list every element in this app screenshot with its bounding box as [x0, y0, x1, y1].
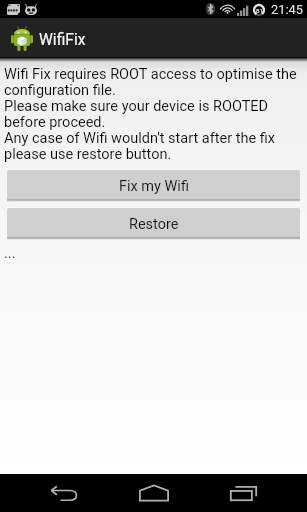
button[interactable]: Fix my Wifi [7, 170, 300, 202]
staticText: Wifi Fix requires ROOT access to optimis… [4, 66, 297, 82]
staticText: WifiFix [39, 31, 86, 49]
button[interactable]: Recent apps [201, 474, 286, 512]
staticText: 21:45 [271, 2, 303, 17]
button[interactable]: Back [21, 474, 106, 512]
staticText: Please make sure your device is ROOTED [4, 98, 269, 114]
button[interactable]: WifiFix [0, 18, 307, 57]
staticText: please use restore button. [4, 146, 172, 162]
button[interactable]: Home [111, 474, 196, 512]
staticText: Fix my Wifi [119, 178, 189, 195]
staticText: Any case of Wifi wouldn't start after th… [4, 130, 275, 146]
button[interactable]: Restore [7, 208, 300, 240]
staticText: Restore [129, 216, 179, 233]
staticText: 81 [256, 7, 263, 14]
staticText: configuration file. [4, 82, 116, 98]
staticText: before proceed. [4, 114, 106, 130]
staticText: ... [4, 245, 16, 262]
